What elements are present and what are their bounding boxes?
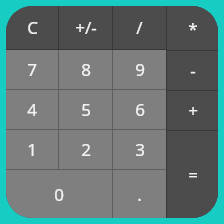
staticText: * xyxy=(188,17,198,40)
staticText: 6 xyxy=(135,98,145,121)
staticText: - xyxy=(190,59,196,82)
button[interactable]: 9 xyxy=(113,50,166,89)
staticText: +/- xyxy=(75,16,97,39)
button[interactable]: 2 xyxy=(59,130,112,169)
staticText: 9 xyxy=(135,58,145,81)
staticText: / xyxy=(136,16,143,39)
staticText: 0 xyxy=(54,183,64,206)
button[interactable]: / xyxy=(113,6,166,49)
staticText: . xyxy=(137,183,142,206)
button[interactable]: 5 xyxy=(59,90,112,129)
staticText: 5 xyxy=(81,98,91,121)
button[interactable]: 7 xyxy=(6,50,58,89)
button[interactable]: * xyxy=(167,6,218,50)
staticText: C xyxy=(27,16,38,39)
button[interactable]: 6 xyxy=(113,90,166,129)
button[interactable]: +/- xyxy=(59,6,112,49)
button[interactable]: C xyxy=(6,6,58,49)
staticText: 7 xyxy=(27,58,37,81)
button[interactable]: = xyxy=(167,131,218,218)
staticText: 8 xyxy=(81,58,91,81)
button[interactable]: + xyxy=(167,91,218,130)
staticText: + xyxy=(188,99,198,122)
button[interactable]: 1 xyxy=(6,130,58,169)
button[interactable]: 0 xyxy=(6,170,112,218)
staticText: = xyxy=(188,163,198,186)
staticText: 1 xyxy=(27,138,37,161)
staticText: 3 xyxy=(135,138,145,161)
staticText: 2 xyxy=(81,138,91,161)
button[interactable]: 3 xyxy=(113,130,166,169)
button[interactable]: - xyxy=(167,51,218,90)
button[interactable]: . xyxy=(113,170,166,218)
staticText: 4 xyxy=(27,98,37,121)
button[interactable]: 4 xyxy=(6,90,58,129)
button[interactable]: 8 xyxy=(59,50,112,89)
